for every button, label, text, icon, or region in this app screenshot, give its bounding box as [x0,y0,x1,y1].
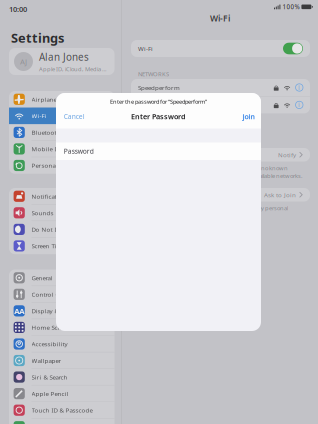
staticText: Accessibility [31,340,67,348]
button[interactable]: Home Screen & Dock [9,319,114,336]
staticText: Wallpaper [31,356,61,365]
staticText: General [31,274,52,282]
button[interactable]: Ask to Join Networks [131,148,310,161]
staticText: 10:00 [9,4,27,14]
staticText: Join [242,112,254,121]
staticText: Cancel [64,112,85,121]
staticText: i [298,100,300,109]
staticText: Password [64,147,94,156]
button[interactable]: Notifications [9,188,114,205]
staticText: AA [14,306,24,316]
button[interactable]: Bluetooth [9,124,114,141]
staticText: Siri & Search [31,373,67,381]
button[interactable]: Wi-Fi [131,40,310,57]
staticText: Wi-Fi [31,112,46,120]
staticText: Personal Hotspot [31,161,83,170]
button[interactable]: Join [210,110,254,122]
button[interactable]: Siri & Search [9,369,114,385]
staticText: Settings [11,29,64,46]
staticText: Apple ID, iCloud, Media &… [39,65,108,73]
button[interactable]: Control Centre [9,286,114,303]
staticText: Allow this device to automatically disco… [138,204,288,220]
staticText: Apple Pencil [31,389,68,398]
button[interactable]: Do Not Disturb [9,221,114,238]
staticText: Hidden Network [138,101,187,109]
button[interactable]: Screen Time [9,238,114,254]
button[interactable]: Wallpaper [9,352,114,369]
staticText: Wi-Fi [138,44,153,53]
button[interactable]: Auto-Join Hotspot [131,188,310,201]
button[interactable]: General [9,269,114,286]
staticText: Home Screen & Dock [31,323,91,332]
staticText: Notify [278,151,296,159]
button[interactable]: Apple Pencil [9,385,114,402]
staticText: Alan Jones [39,50,89,63]
button[interactable]: Hidden Network [131,96,310,113]
staticText: Touch ID & Passcode [31,406,92,414]
staticText: Display & Brightness [31,307,92,315]
staticText: Sounds [31,209,53,217]
button[interactable]: Touch ID & Passcode [9,402,114,418]
button[interactable]: Sounds [9,205,114,221]
button[interactable]: Mobile Data [9,141,114,157]
button[interactable]: AJ [9,48,114,75]
staticText: 100% [282,3,299,11]
button[interactable]: Wi-Fi [9,107,114,124]
staticText: Wi-Fi [210,12,230,24]
button[interactable]: Accessibility [9,336,114,352]
staticText: Airplane Mode [31,95,75,103]
staticText: Notifications [31,192,69,200]
staticText: Speedperform [138,83,180,92]
staticText: AJ [20,56,27,67]
staticText: i [298,83,300,92]
staticText: Do Not Disturb [31,225,76,234]
staticText: Control Centre [31,290,73,298]
staticText: Bluetooth [31,128,60,137]
button[interactable]: Battery [9,418,114,424]
staticText: NETWORKS [138,70,169,78]
staticText: Mobile Data [31,145,66,153]
staticText: Screen Time [31,242,65,250]
button[interactable]: Speedperform [131,79,310,96]
staticText: Known networks will be joined automatica… [138,164,303,180]
button[interactable]: Cancel [64,110,108,122]
button[interactable]: Airplane Mode [9,91,114,108]
staticText: Enter Password [131,112,186,121]
staticText: Ask to Join [264,191,296,199]
button[interactable]: Personal Hotspot [9,157,114,174]
staticText: Enter the password for “Speedperform” [110,98,207,105]
button[interactable]: AA [9,303,114,319]
